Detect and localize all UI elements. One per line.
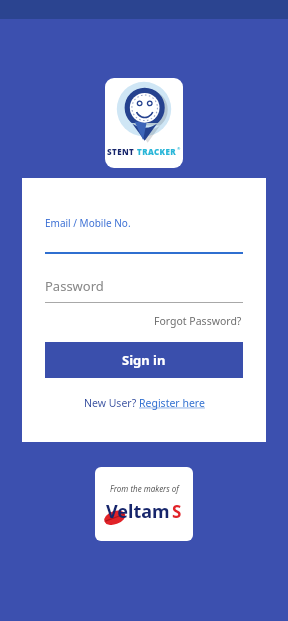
staticText: Password — [45, 277, 104, 295]
staticText: S — [172, 500, 182, 523]
staticText: Forgot Password? — [154, 314, 242, 328]
staticText: New User? — [84, 396, 139, 410]
staticText: Register here — [139, 396, 205, 410]
button[interactable]: Sign in — [45, 342, 243, 378]
other: Stent Tracker logo — [105, 78, 183, 168]
staticText: Veltam — [106, 499, 170, 524]
staticText: Email / Mobile No. — [45, 216, 131, 230]
staticText: TRACKER — [137, 146, 177, 157]
staticText: STENT — [107, 146, 135, 157]
staticText: Sign in — [122, 351, 166, 369]
staticText: From the makers of — [110, 483, 179, 494]
other: From the makers of Veltam S — [95, 467, 193, 541]
staticText: ® — [177, 146, 181, 151]
button[interactable]: Password — [45, 277, 243, 303]
button[interactable]: Forgot Password? — [153, 312, 243, 330]
button[interactable]: Register here — [139, 396, 205, 410]
button[interactable]: Email / Mobile No. — [45, 216, 243, 254]
